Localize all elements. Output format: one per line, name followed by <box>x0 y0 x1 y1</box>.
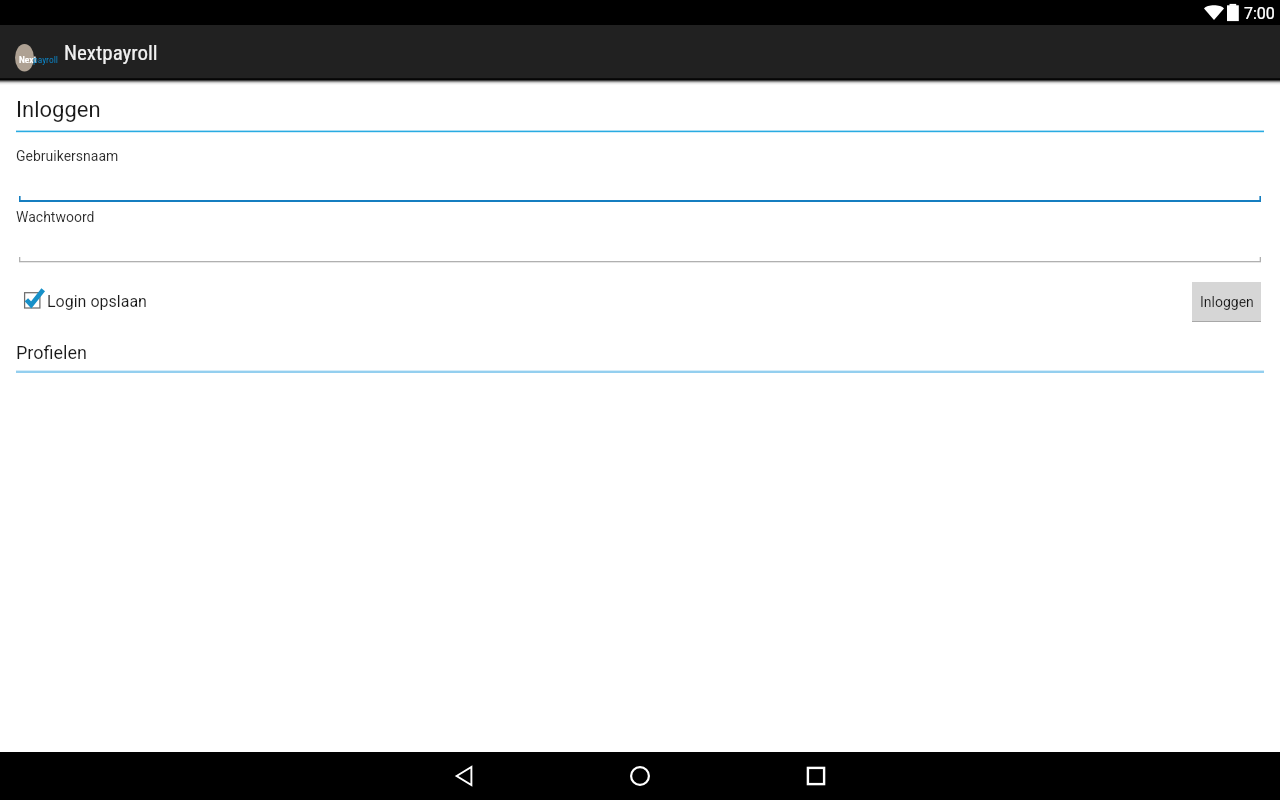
other: Battery full <box>1227 3 1240 23</box>
staticText: Next <box>19 54 37 65</box>
staticText: Login opslaan <box>47 292 147 311</box>
staticText: Inloggen <box>1200 294 1254 310</box>
staticText: Nextpayroll <box>64 41 158 66</box>
button[interactable]: Gebruikersnaam invoerveld <box>19 168 1261 203</box>
staticText: Inloggen <box>16 97 101 123</box>
staticText: Profielen <box>16 342 87 363</box>
button[interactable]: Recent apps <box>792 752 840 800</box>
button[interactable]: Nextpayroll logo <box>14 39 62 71</box>
button[interactable]: Back <box>440 752 488 800</box>
button[interactable]: Login opslaan <box>16 286 157 316</box>
button[interactable]: Wachtwoord invoerveld <box>19 229 1261 264</box>
staticText: Gebruikersnaam <box>16 148 119 164</box>
button[interactable]: Home <box>616 752 664 800</box>
staticText: payroll <box>33 54 59 65</box>
staticText: Wachtwoord <box>16 209 95 225</box>
other: Wi-Fi <box>1204 4 1224 20</box>
button[interactable]: Inloggen <box>1192 282 1261 322</box>
staticText: 7:00 <box>1244 4 1275 23</box>
